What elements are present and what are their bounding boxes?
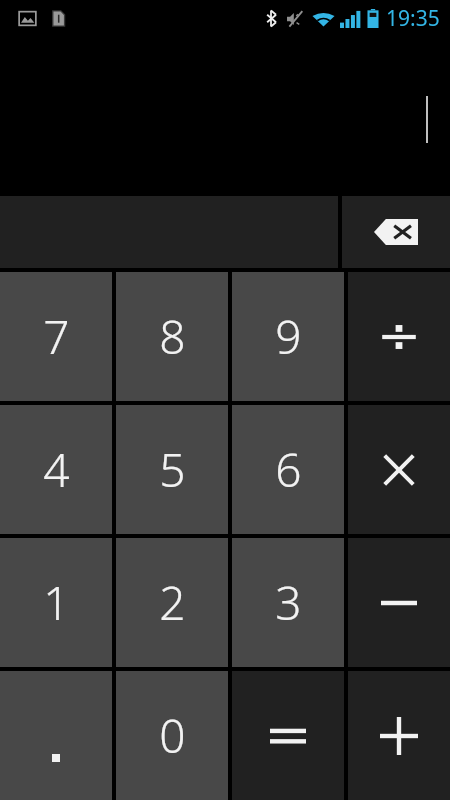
staticText: 0 [159,704,186,767]
staticText: 2 [159,571,186,634]
button[interactable]: Calculator display [0,36,450,193]
other: Battery [367,9,379,28]
staticText: 9 [275,305,302,368]
button[interactable]: 1 [0,538,112,667]
staticText: 19:35 [386,4,440,33]
button[interactable]: 4 [0,405,112,534]
staticText: 4 [43,438,70,501]
button[interactable]: Subtract [348,538,450,667]
button[interactable]: 5 [116,405,228,534]
other: Clock 19:35 [386,4,440,33]
other: Bluetooth on [265,9,277,28]
button[interactable]: Delete [342,196,450,268]
button[interactable]: 8 [116,272,228,401]
staticText: 6 [275,438,302,501]
other: Wi-Fi connected [312,10,335,28]
button[interactable]: Divide [348,272,450,401]
button[interactable]: 6 [232,405,344,534]
other: Mobile signal [340,10,361,28]
staticText: 3 [275,571,302,634]
button[interactable]: 0 [116,671,228,800]
button[interactable]: 7 [0,272,112,401]
other: Silent mode [286,10,303,28]
staticText: 1 [43,571,70,634]
button[interactable]: Decimal point [0,671,112,800]
button[interactable]: Multiply [348,405,450,534]
button[interactable]: 9 [232,272,344,401]
button[interactable]: 3 [232,538,344,667]
staticText: 8 [159,305,186,368]
staticText: 5 [159,438,186,501]
button[interactable]: Add [348,671,450,800]
button[interactable]: 2 [116,538,228,667]
button[interactable]: Equals [232,671,344,800]
staticText: 7 [43,305,70,368]
